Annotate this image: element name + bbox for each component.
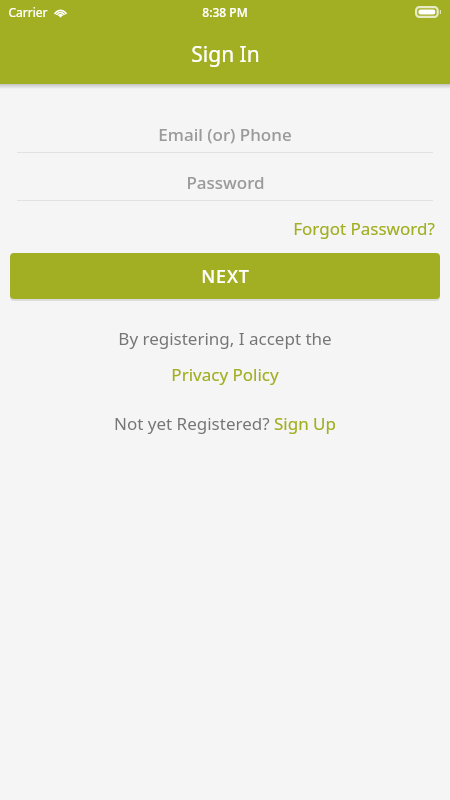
staticText: NEXT [201, 264, 250, 289]
staticText: 8:38 PM [202, 4, 248, 20]
staticText: By registering, I accept the [118, 327, 332, 350]
staticText: Not yet Registered? Sign Up [114, 412, 336, 435]
staticText: Sign In [191, 40, 260, 69]
other: Battery [415, 6, 442, 18]
staticText: Privacy Policy [171, 363, 279, 386]
staticText: Password [186, 171, 265, 194]
button[interactable]: NEXT [10, 253, 440, 299]
staticText: Email (or) Phone [158, 123, 292, 146]
button[interactable]: Not yet Registered? Sign Up [110, 410, 340, 437]
button[interactable]: Password [0, 164, 450, 201]
button[interactable]: Email (or) Phone [0, 116, 450, 153]
staticText: Carrier [8, 4, 48, 20]
button[interactable]: Privacy Policy [167, 361, 283, 388]
staticText: Forgot Password? [293, 217, 435, 240]
button[interactable]: Forgot Password? [291, 213, 437, 244]
